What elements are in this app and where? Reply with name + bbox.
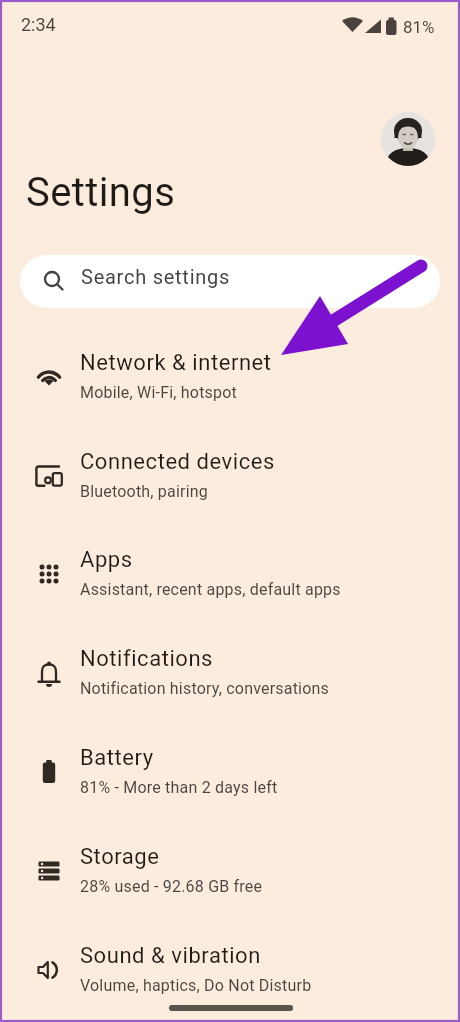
staticText: Sound & vibration <box>80 943 261 969</box>
button[interactable]: Network & internet <box>0 328 460 425</box>
staticText: Network & internet <box>80 350 272 376</box>
staticText: 81% <box>403 17 435 37</box>
button[interactable]: Battery <box>0 723 460 820</box>
staticText: 81% - More than 2 days left <box>80 778 278 797</box>
button[interactable]: Storage <box>0 822 460 919</box>
staticText: Search settings <box>81 265 231 288</box>
staticText: Notifications <box>80 646 214 672</box>
button[interactable]: Search settings <box>20 255 440 308</box>
staticText: Battery <box>80 745 154 771</box>
staticText: 2:34 <box>21 14 56 35</box>
staticText: 28% used - 92.68 GB free <box>80 877 263 896</box>
button[interactable]: Apps <box>0 525 460 622</box>
staticText: Storage <box>80 844 160 870</box>
staticText: Volume, haptics, Do Not Disturb <box>80 976 312 995</box>
button[interactable] <box>381 112 435 166</box>
staticText: Settings <box>26 169 176 216</box>
staticText: Notification history, conversations <box>80 679 330 698</box>
staticText: Bluetooth, pairing <box>80 482 208 501</box>
button[interactable]: Connected devices <box>0 427 460 524</box>
staticText: Connected devices <box>80 449 275 475</box>
staticText: Assistant, recent apps, default apps <box>80 580 341 599</box>
button[interactable]: Sound & vibration <box>0 921 460 1018</box>
button[interactable]: Notifications <box>0 624 460 721</box>
staticText: Mobile, Wi-Fi, hotspot <box>80 383 237 402</box>
staticText: Apps <box>80 547 133 573</box>
